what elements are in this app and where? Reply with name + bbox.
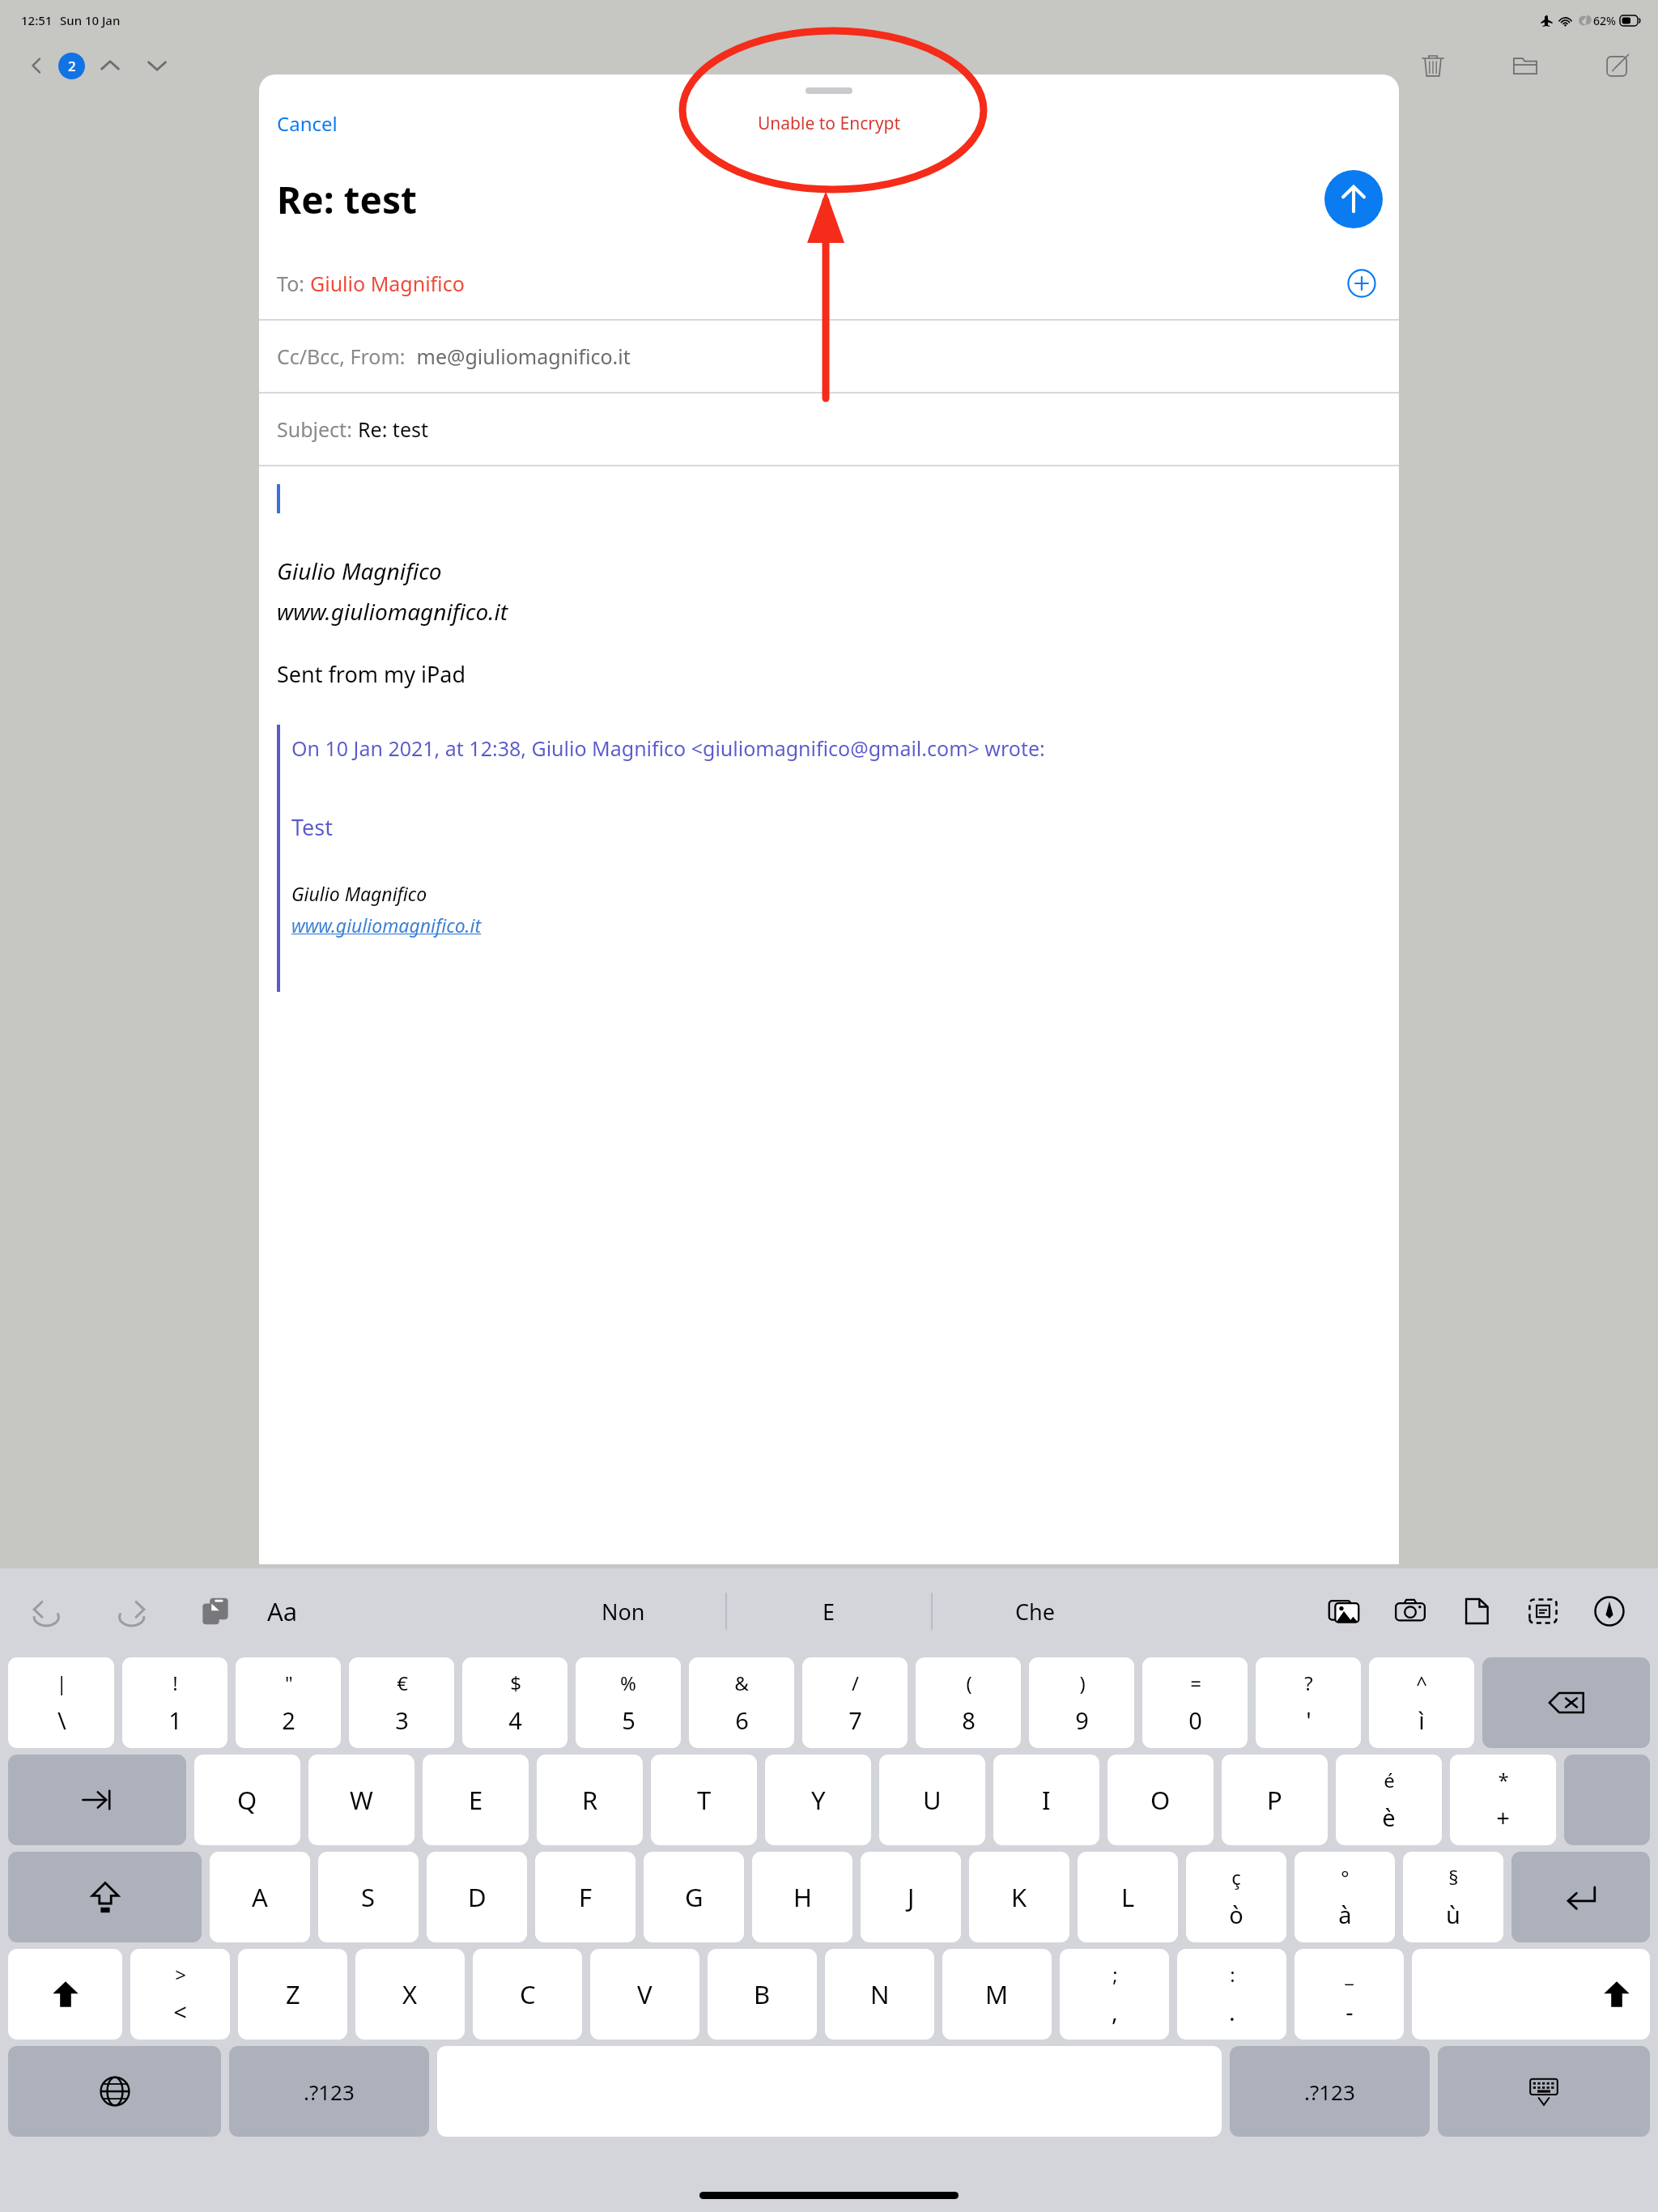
button[interactable]: ! [122, 1657, 227, 1748]
staticText: 62% [1593, 13, 1616, 28]
button[interactable]: Undo [26, 1590, 68, 1632]
button[interactable]: ? [1256, 1657, 1361, 1748]
staticText: 9 [1075, 1704, 1089, 1736]
button[interactable]: E [423, 1755, 529, 1845]
button[interactable]: .?123 [229, 2046, 429, 2137]
button[interactable]: T [651, 1755, 757, 1845]
button[interactable]: S [318, 1852, 419, 1942]
button[interactable]: Next message [138, 47, 176, 84]
staticText: 8 [962, 1704, 976, 1736]
button[interactable]: G [644, 1852, 744, 1942]
button[interactable]: € [349, 1657, 454, 1748]
button[interactable]: Y [765, 1755, 871, 1845]
button[interactable]: Cancel [259, 105, 355, 141]
button[interactable]: = [1142, 1657, 1248, 1748]
button[interactable]: C [473, 1949, 582, 2040]
button[interactable]: ; [1060, 1949, 1169, 2040]
button[interactable]: Switch keyboard [8, 2046, 221, 2137]
button[interactable]: Camera [1389, 1590, 1431, 1632]
button[interactable]: Q [194, 1755, 300, 1845]
button[interactable]: 2 [58, 53, 85, 79]
button[interactable]: Markup [1588, 1590, 1630, 1632]
button[interactable]: D [427, 1852, 527, 1942]
button[interactable]: Subject: [259, 393, 1399, 465]
button[interactable]: H [752, 1852, 852, 1942]
button[interactable]: Redo [110, 1590, 152, 1632]
button[interactable]: Che [933, 1568, 1137, 1654]
button[interactable]: I [993, 1755, 1099, 1845]
button[interactable]: U [879, 1755, 985, 1845]
button[interactable]: Hide keyboard [1438, 2046, 1650, 2137]
button[interactable]: J [861, 1852, 961, 1942]
staticText: Cancel [277, 110, 338, 136]
button[interactable]: Caps lock [8, 1852, 202, 1942]
button[interactable]: O [1107, 1755, 1214, 1845]
button[interactable]: Previous message [91, 47, 129, 84]
button[interactable]: / [802, 1657, 908, 1748]
button[interactable]: > [130, 1949, 230, 2040]
button[interactable]: % [576, 1657, 681, 1748]
button[interactable]: Back [18, 47, 55, 84]
button[interactable]: Non [521, 1568, 725, 1654]
button[interactable]: Add recipient [1342, 264, 1381, 303]
button[interactable]: To: [259, 248, 1399, 319]
button[interactable]: B [708, 1949, 817, 2040]
button[interactable]: : [1177, 1949, 1286, 2040]
button[interactable]: E [727, 1568, 931, 1654]
staticText: R [582, 1783, 598, 1817]
button[interactable]: K [969, 1852, 1069, 1942]
button[interactable]: ( [916, 1657, 1021, 1748]
button[interactable]: Tab [8, 1755, 186, 1845]
button[interactable]: W [308, 1755, 414, 1845]
button[interactable]: R [537, 1755, 643, 1845]
staticText: & [734, 1670, 749, 1696]
button[interactable]: V [590, 1949, 699, 2040]
staticText: : [1230, 1961, 1235, 1988]
button[interactable]: Document [1456, 1590, 1498, 1632]
staticText: me@giuliomagnifico.it [411, 342, 631, 370]
staticText: Subject: [277, 415, 358, 443]
button[interactable]: Backspace [1482, 1657, 1650, 1748]
button[interactable]: N [825, 1949, 934, 2040]
button[interactable]: $ [462, 1657, 568, 1748]
button[interactable]: é [1336, 1755, 1442, 1845]
button[interactable]: ° [1295, 1852, 1395, 1942]
button[interactable]: F [535, 1852, 636, 1942]
other: Hide keyboard [1528, 2075, 1560, 2108]
button[interactable]: X [355, 1949, 465, 2040]
button[interactable]: ç [1186, 1852, 1286, 1942]
button[interactable]: Compose [1596, 45, 1639, 87]
button[interactable]: Move to folder [1504, 45, 1546, 87]
button[interactable]: Delete [1412, 45, 1454, 87]
button[interactable]: Photos [1323, 1590, 1365, 1632]
button[interactable]: Z [238, 1949, 347, 2040]
button[interactable]: & [689, 1657, 794, 1748]
staticText: K [1011, 1880, 1027, 1914]
staticText: " [285, 1670, 293, 1696]
button[interactable]: M [942, 1949, 1052, 2040]
button[interactable]: | [8, 1657, 114, 1748]
other: Switch keyboard [100, 2076, 130, 2107]
staticText: V [637, 1977, 653, 2011]
button[interactable]: .?123 [1230, 2046, 1430, 2137]
button[interactable]: P [1222, 1755, 1328, 1845]
button[interactable]: " [236, 1657, 341, 1748]
button[interactable]: Paste [194, 1590, 236, 1632]
button[interactable]: Return [1511, 1852, 1650, 1942]
other: Shift [52, 1980, 79, 2008]
button[interactable]: Scan [1522, 1590, 1564, 1632]
button[interactable] [437, 2046, 1222, 2137]
button[interactable]: ) [1029, 1657, 1134, 1748]
button[interactable]: Aa [261, 1588, 304, 1635]
button[interactable]: § [1403, 1852, 1503, 1942]
button[interactable]: Shift [1412, 1949, 1650, 2040]
button[interactable]: ^ [1369, 1657, 1474, 1748]
button[interactable]: Cc/Bcc, From: [259, 321, 1399, 392]
button[interactable]: Shift [8, 1949, 122, 2040]
button[interactable]: L [1078, 1852, 1178, 1942]
button[interactable]: A [210, 1852, 310, 1942]
button[interactable] [1564, 1755, 1650, 1845]
button[interactable]: _ [1295, 1949, 1404, 2040]
button[interactable]: * [1450, 1755, 1556, 1845]
button[interactable]: Send [1324, 170, 1383, 228]
